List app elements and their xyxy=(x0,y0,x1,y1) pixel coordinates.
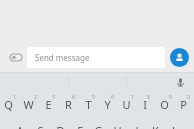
button[interactable]: P xyxy=(175,92,194,117)
staticText: U xyxy=(122,97,131,112)
button[interactable]: Account xyxy=(170,48,189,67)
staticText: 5 xyxy=(92,94,95,101)
staticText: W xyxy=(23,97,34,112)
staticText: 0 xyxy=(187,94,190,101)
staticText: 1 xyxy=(13,94,16,101)
staticText: J xyxy=(135,123,139,129)
staticText: S xyxy=(37,123,44,129)
button[interactable]: D xyxy=(50,117,70,129)
staticText: Q xyxy=(4,97,13,112)
staticText: 2 xyxy=(34,94,37,101)
button[interactable]: H xyxy=(108,117,127,129)
button[interactable]: Q xyxy=(0,92,20,117)
button[interactable]: L xyxy=(165,117,184,129)
button[interactable]: U xyxy=(118,92,137,117)
button[interactable]: J xyxy=(127,117,146,129)
button[interactable]: F xyxy=(70,117,89,129)
staticText: 4 xyxy=(72,94,75,101)
button[interactable]: Y xyxy=(99,92,118,117)
staticText: A xyxy=(16,123,24,129)
staticText: 9 xyxy=(169,94,172,101)
button[interactable]: A xyxy=(10,117,30,129)
button[interactable]: K xyxy=(146,117,165,129)
button[interactable]: Send message xyxy=(27,47,165,68)
staticText: D xyxy=(56,123,65,129)
staticText: O xyxy=(160,97,169,112)
button[interactable]: S xyxy=(30,117,50,129)
staticText: 8 xyxy=(147,94,150,101)
staticText: P xyxy=(180,97,187,112)
staticText: H xyxy=(113,123,122,129)
staticText: 3 xyxy=(52,94,55,101)
staticText: E xyxy=(45,97,52,112)
staticText: Send message xyxy=(35,52,90,63)
staticText: I xyxy=(143,97,147,112)
button[interactable]: W xyxy=(20,92,40,117)
button[interactable]: E xyxy=(40,92,60,117)
staticText: 6 xyxy=(111,94,114,101)
staticText: K xyxy=(152,123,159,129)
staticText: Y xyxy=(104,97,111,112)
button[interactable]: G xyxy=(89,117,108,129)
button[interactable]: Stickers xyxy=(8,49,24,65)
button[interactable]: R xyxy=(60,92,80,117)
staticText: T xyxy=(85,97,92,112)
staticText: G xyxy=(94,123,103,129)
button[interactable]: O xyxy=(156,92,175,117)
staticText: 7 xyxy=(131,94,134,101)
button[interactable]: Voice input xyxy=(172,74,188,90)
staticText: L xyxy=(172,123,178,129)
staticText: F xyxy=(77,123,83,129)
staticText: R xyxy=(65,97,72,112)
button[interactable]: I xyxy=(137,92,156,117)
button[interactable]: T xyxy=(80,92,99,117)
